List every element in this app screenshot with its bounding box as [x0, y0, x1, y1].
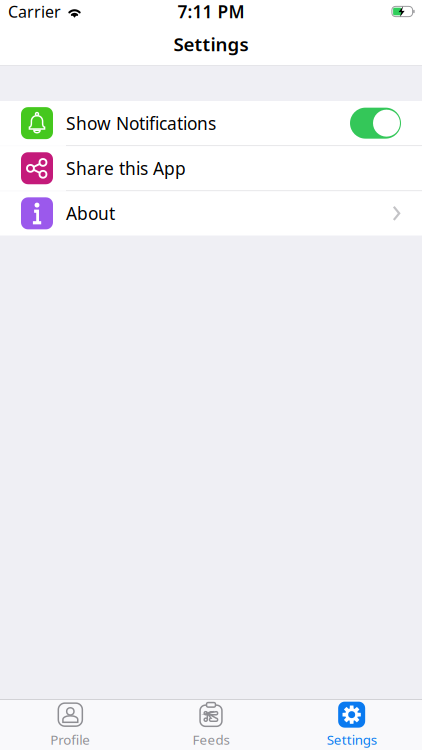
- button[interactable]: Settings: [281, 700, 422, 750]
- staticText: 7:11 PM: [177, 0, 244, 23]
- staticText: Settings: [327, 731, 377, 748]
- button[interactable]: About: [0, 191, 422, 235]
- button[interactable]: Show Notifications: [0, 101, 422, 145]
- staticText: Show Notifications: [66, 112, 216, 135]
- staticText: Settings: [173, 32, 248, 56]
- button[interactable]: Feeds: [141, 700, 281, 750]
- staticText: Carrier: [8, 1, 61, 22]
- staticText: Feeds: [192, 731, 229, 748]
- staticText: Profile: [50, 731, 90, 748]
- button[interactable]: Share this App: [0, 146, 422, 190]
- staticText: About: [66, 202, 115, 225]
- button[interactable]: Profile: [0, 700, 141, 750]
- staticText: Share this App: [66, 157, 186, 180]
